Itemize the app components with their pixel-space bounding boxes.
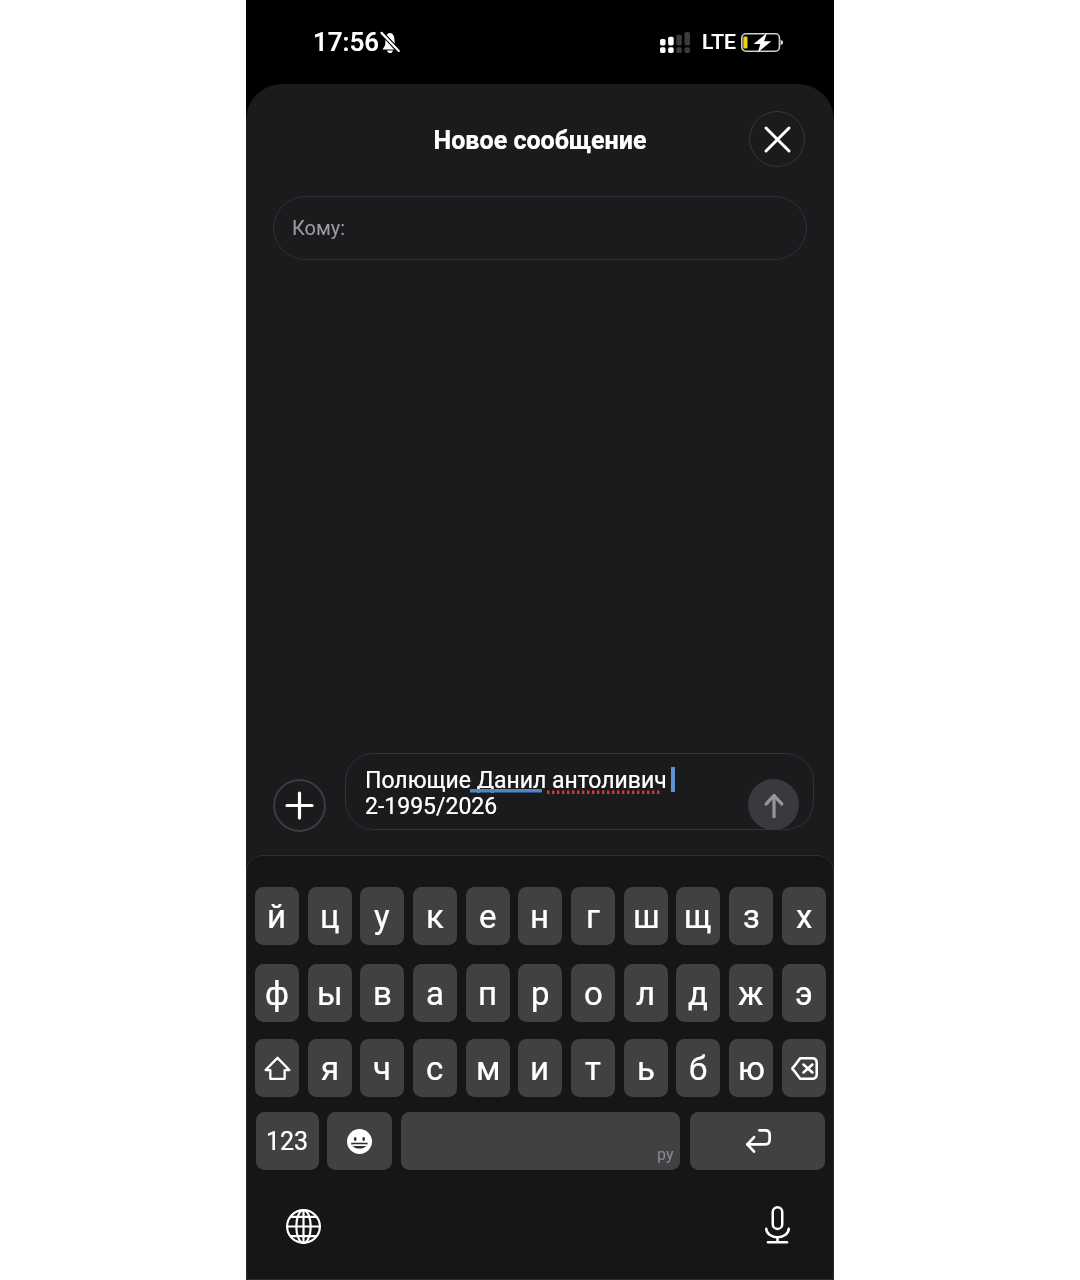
button[interactable]: Полющие Данил антоливич xyxy=(345,753,814,830)
staticText: 17:56 xyxy=(313,27,380,57)
button[interactable]: Send xyxy=(748,779,799,830)
button[interactable]: Shift xyxy=(255,1039,299,1097)
staticText: л xyxy=(636,974,656,1013)
button[interactable]: п xyxy=(466,964,510,1022)
staticText: е xyxy=(479,897,497,936)
button[interactable]: с xyxy=(413,1039,457,1097)
staticText: ру xyxy=(657,1145,674,1164)
staticText: ч xyxy=(373,1049,391,1088)
button[interactable]: ь xyxy=(624,1039,668,1097)
staticText: ю xyxy=(738,1049,765,1088)
staticText: ы xyxy=(317,974,343,1013)
staticText: ц xyxy=(320,897,340,936)
staticText: Полющие Данил антоливич xyxy=(365,767,667,794)
button[interactable]: щ xyxy=(676,887,720,945)
staticText: а xyxy=(426,974,444,1013)
staticText: в xyxy=(373,974,392,1013)
staticText: м xyxy=(476,1049,501,1088)
button[interactable]: г xyxy=(571,887,615,945)
staticText: н xyxy=(530,897,550,936)
button[interactable]: Emoji xyxy=(327,1112,392,1170)
button[interactable]: в xyxy=(360,964,404,1022)
staticText: о xyxy=(584,974,603,1013)
staticText: г xyxy=(586,897,600,936)
button[interactable]: ж xyxy=(729,964,773,1022)
button[interactable]: л xyxy=(624,964,668,1022)
staticText: щ xyxy=(684,897,712,936)
staticText: р xyxy=(531,974,550,1013)
button[interactable]: а xyxy=(413,964,457,1022)
staticText: я xyxy=(321,1049,340,1088)
button[interactable]: м xyxy=(466,1039,510,1097)
staticText: у xyxy=(374,897,390,936)
staticText: ь xyxy=(637,1049,655,1088)
button[interactable]: х xyxy=(782,887,826,945)
button[interactable]: Change keyboard language xyxy=(281,1204,325,1248)
button[interactable]: ру xyxy=(401,1112,680,1170)
staticText: й xyxy=(267,897,287,936)
button[interactable]: 123 xyxy=(256,1112,319,1170)
button[interactable]: Voice input xyxy=(765,1206,790,1244)
button[interactable]: Enter xyxy=(690,1112,825,1170)
button[interactable]: и xyxy=(518,1039,562,1097)
staticText: х xyxy=(796,897,813,936)
button[interactable]: ч xyxy=(360,1039,404,1097)
button[interactable]: у xyxy=(360,887,404,945)
button[interactable]: ц xyxy=(308,887,352,945)
button[interactable]: б xyxy=(676,1039,720,1097)
staticText: д xyxy=(688,974,708,1013)
staticText: 2-1995/2026 xyxy=(365,793,498,820)
staticText: и xyxy=(530,1049,550,1088)
staticText: п xyxy=(478,974,498,1013)
button[interactable]: ф xyxy=(255,964,299,1022)
button[interactable]: р xyxy=(518,964,562,1022)
button[interactable]: Backspace xyxy=(782,1039,826,1097)
button[interactable]: я xyxy=(308,1039,352,1097)
button[interactable]: е xyxy=(466,887,510,945)
button[interactable]: Close xyxy=(749,111,805,167)
staticText: к xyxy=(426,897,444,936)
button[interactable]: т xyxy=(571,1039,615,1097)
button[interactable]: з xyxy=(729,887,773,945)
button[interactable]: д xyxy=(676,964,720,1022)
button[interactable]: Add attachment xyxy=(273,779,326,832)
staticText: с xyxy=(426,1049,444,1088)
staticText: LTE xyxy=(702,30,736,55)
staticText: з xyxy=(743,897,760,936)
button[interactable]: Кому: xyxy=(273,196,807,260)
button[interactable]: ю xyxy=(729,1039,773,1097)
button[interactable]: э xyxy=(782,964,826,1022)
staticText: 123 xyxy=(266,1127,309,1156)
staticText: б xyxy=(689,1049,708,1088)
button[interactable]: о xyxy=(571,964,615,1022)
staticText: ф xyxy=(265,974,289,1013)
button[interactable]: й xyxy=(255,887,299,945)
button[interactable]: ш xyxy=(624,887,668,945)
staticText: ш xyxy=(633,897,660,936)
staticText: ж xyxy=(738,974,764,1013)
button[interactable]: н xyxy=(518,887,562,945)
staticText: Кому: xyxy=(292,216,346,239)
staticText: Новое сообщение xyxy=(246,126,834,155)
button[interactable]: к xyxy=(413,887,457,945)
staticText: э xyxy=(795,974,813,1013)
button[interactable]: ы xyxy=(308,964,352,1022)
staticText: т xyxy=(585,1049,601,1088)
